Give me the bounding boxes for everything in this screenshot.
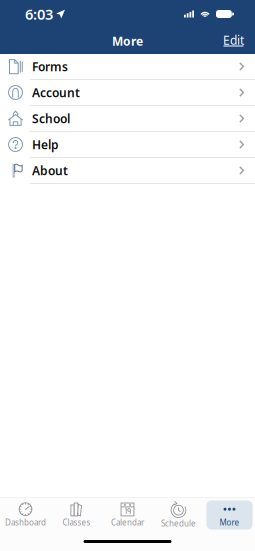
button[interactable]: School xyxy=(0,106,255,132)
button[interactable]: Calendar xyxy=(102,498,153,531)
staticText: Forms xyxy=(32,58,68,74)
staticText: Dashboard xyxy=(5,517,46,528)
staticText: Edit xyxy=(223,32,244,48)
button[interactable]: Dashboard xyxy=(0,498,51,531)
button[interactable]: Forms xyxy=(0,54,255,80)
button[interactable]: Help xyxy=(0,132,255,158)
button[interactable]: Classes xyxy=(51,498,102,531)
staticText: Calendar xyxy=(111,517,144,528)
staticText: More xyxy=(112,33,143,49)
staticText: School xyxy=(32,110,70,126)
staticText: Schedule xyxy=(161,518,196,529)
button[interactable]: Edit xyxy=(223,34,255,47)
button[interactable]: Account xyxy=(0,80,255,106)
staticText: 6:03 xyxy=(25,4,53,24)
button[interactable]: About xyxy=(0,158,255,184)
button[interactable]: Schedule xyxy=(153,498,204,531)
button[interactable]: More xyxy=(204,498,255,531)
staticText: Classes xyxy=(62,517,90,528)
staticText: Help xyxy=(32,136,59,152)
staticText: About xyxy=(32,162,68,178)
staticText: Account xyxy=(32,84,80,100)
staticText: More xyxy=(219,517,239,528)
